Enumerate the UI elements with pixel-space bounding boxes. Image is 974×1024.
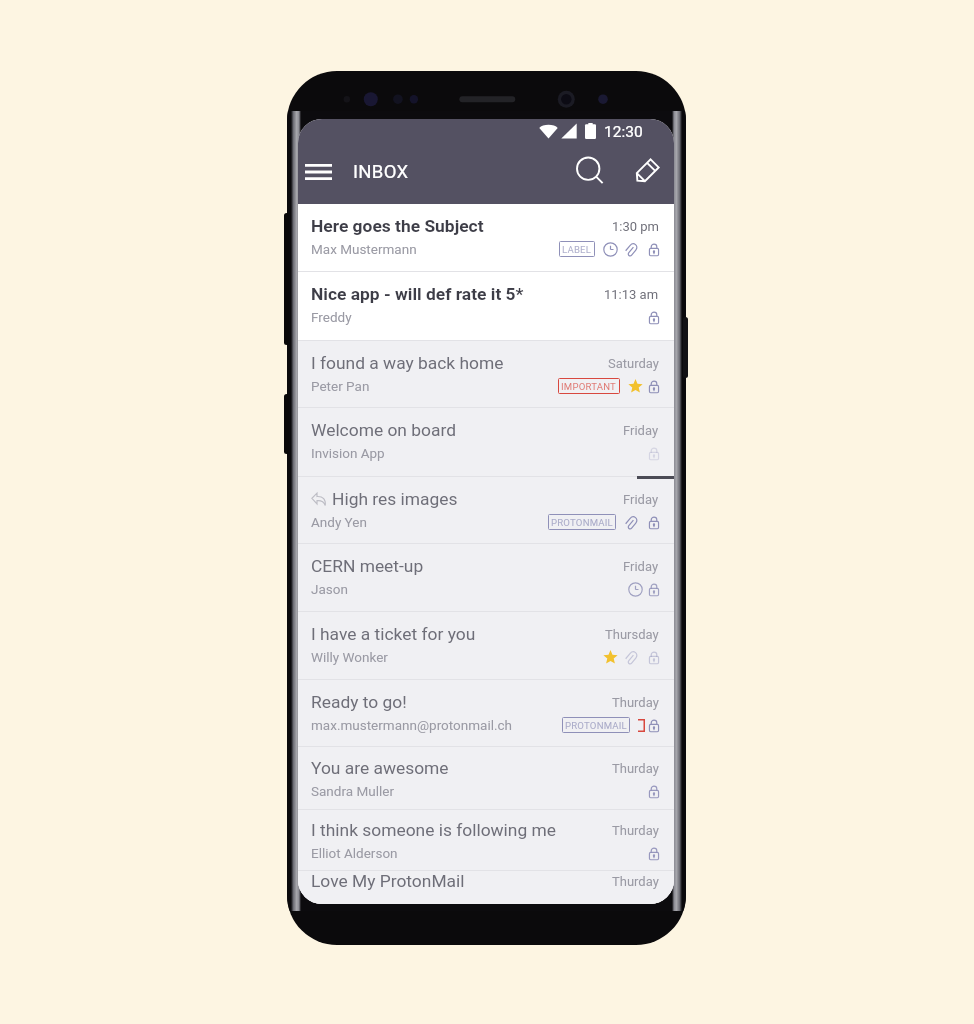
- staticText: Friday: [623, 492, 659, 507]
- staticText: Saturday: [608, 356, 659, 371]
- staticText: 11:13 am: [604, 287, 659, 302]
- button[interactable]: I found a way back home: [298, 341, 674, 407]
- staticText: I have a ticket for you: [311, 624, 597, 644]
- staticText: Friday: [623, 559, 659, 574]
- staticText: Invision App: [311, 445, 385, 461]
- staticText: PROTONMAIL: [551, 517, 613, 528]
- staticText: Thurday: [612, 761, 659, 776]
- staticText: I think someone is following me: [311, 820, 604, 840]
- button[interactable]: You are awesome: [298, 747, 674, 809]
- staticText: Willy Wonker: [311, 649, 388, 665]
- staticText: Sandra Muller: [311, 783, 394, 799]
- staticText: Peter Pan: [311, 378, 370, 394]
- staticText: 1:30 pm: [612, 219, 659, 234]
- staticText: 12:30: [604, 123, 643, 141]
- staticText: max.mustermann@protonmail.ch: [311, 717, 513, 733]
- staticText: You are awesome: [311, 758, 604, 778]
- staticText: Friday: [623, 423, 659, 438]
- button[interactable]: CERN meet-up: [298, 544, 674, 611]
- staticText: Love My ProtonMail: [311, 871, 604, 891]
- button[interactable]: Compose: [626, 149, 666, 195]
- staticText: Here goes the Subject: [311, 216, 604, 236]
- staticText: Thursday: [605, 627, 659, 642]
- staticText: PROTONMAIL: [565, 720, 627, 731]
- button[interactable]: I have a ticket for you: [298, 612, 674, 679]
- staticText: INBOX: [353, 161, 409, 183]
- staticText: Elliot Alderson: [311, 845, 398, 861]
- staticText: Freddy: [311, 309, 352, 325]
- staticText: I found a way back home: [311, 353, 600, 373]
- staticText: Welcome on board: [311, 420, 615, 440]
- button[interactable]: Nice app - will def rate it 5*: [298, 272, 674, 340]
- button[interactable]: Ready to go!: [298, 680, 674, 746]
- staticText: Nice app - will def rate it 5*: [311, 284, 596, 304]
- staticText: Ready to go!: [311, 692, 604, 712]
- staticText: Max Mustermann: [311, 241, 417, 257]
- button[interactable]: Search: [568, 149, 614, 195]
- staticText: LABEL: [562, 244, 592, 255]
- button[interactable]: I think someone is following me: [298, 810, 674, 870]
- button[interactable]: High res images: [298, 477, 674, 543]
- staticText: IMPORTANT: [561, 381, 617, 392]
- staticText: Thurday: [612, 823, 659, 838]
- button[interactable]: Open navigation menu: [298, 149, 338, 195]
- button[interactable]: Love My ProtonMail: [298, 871, 674, 904]
- staticText: CERN meet-up: [311, 556, 615, 576]
- staticText: Thurday: [612, 874, 659, 889]
- button[interactable]: Here goes the Subject: [298, 204, 674, 271]
- staticText: Jason: [311, 581, 348, 597]
- staticText: Andy Yen: [311, 514, 367, 530]
- staticText: Thurday: [612, 695, 659, 710]
- button[interactable]: Welcome on board: [298, 408, 674, 476]
- staticText: High res images: [332, 489, 615, 509]
